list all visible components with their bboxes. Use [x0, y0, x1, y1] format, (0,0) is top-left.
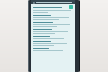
- button[interactable]: Back: [32, 1, 35, 4]
- button[interactable]: Toggle option: [31, 4, 75, 14]
- button[interactable]: Toggle option: [69, 5, 73, 9]
- button[interactable]: [31, 40, 75, 47]
- button[interactable]: [31, 47, 75, 52]
- button[interactable]: [31, 14, 75, 21]
- button[interactable]: [31, 35, 75, 40]
- button[interactable]: [31, 21, 75, 28]
- button[interactable]: [31, 28, 75, 35]
